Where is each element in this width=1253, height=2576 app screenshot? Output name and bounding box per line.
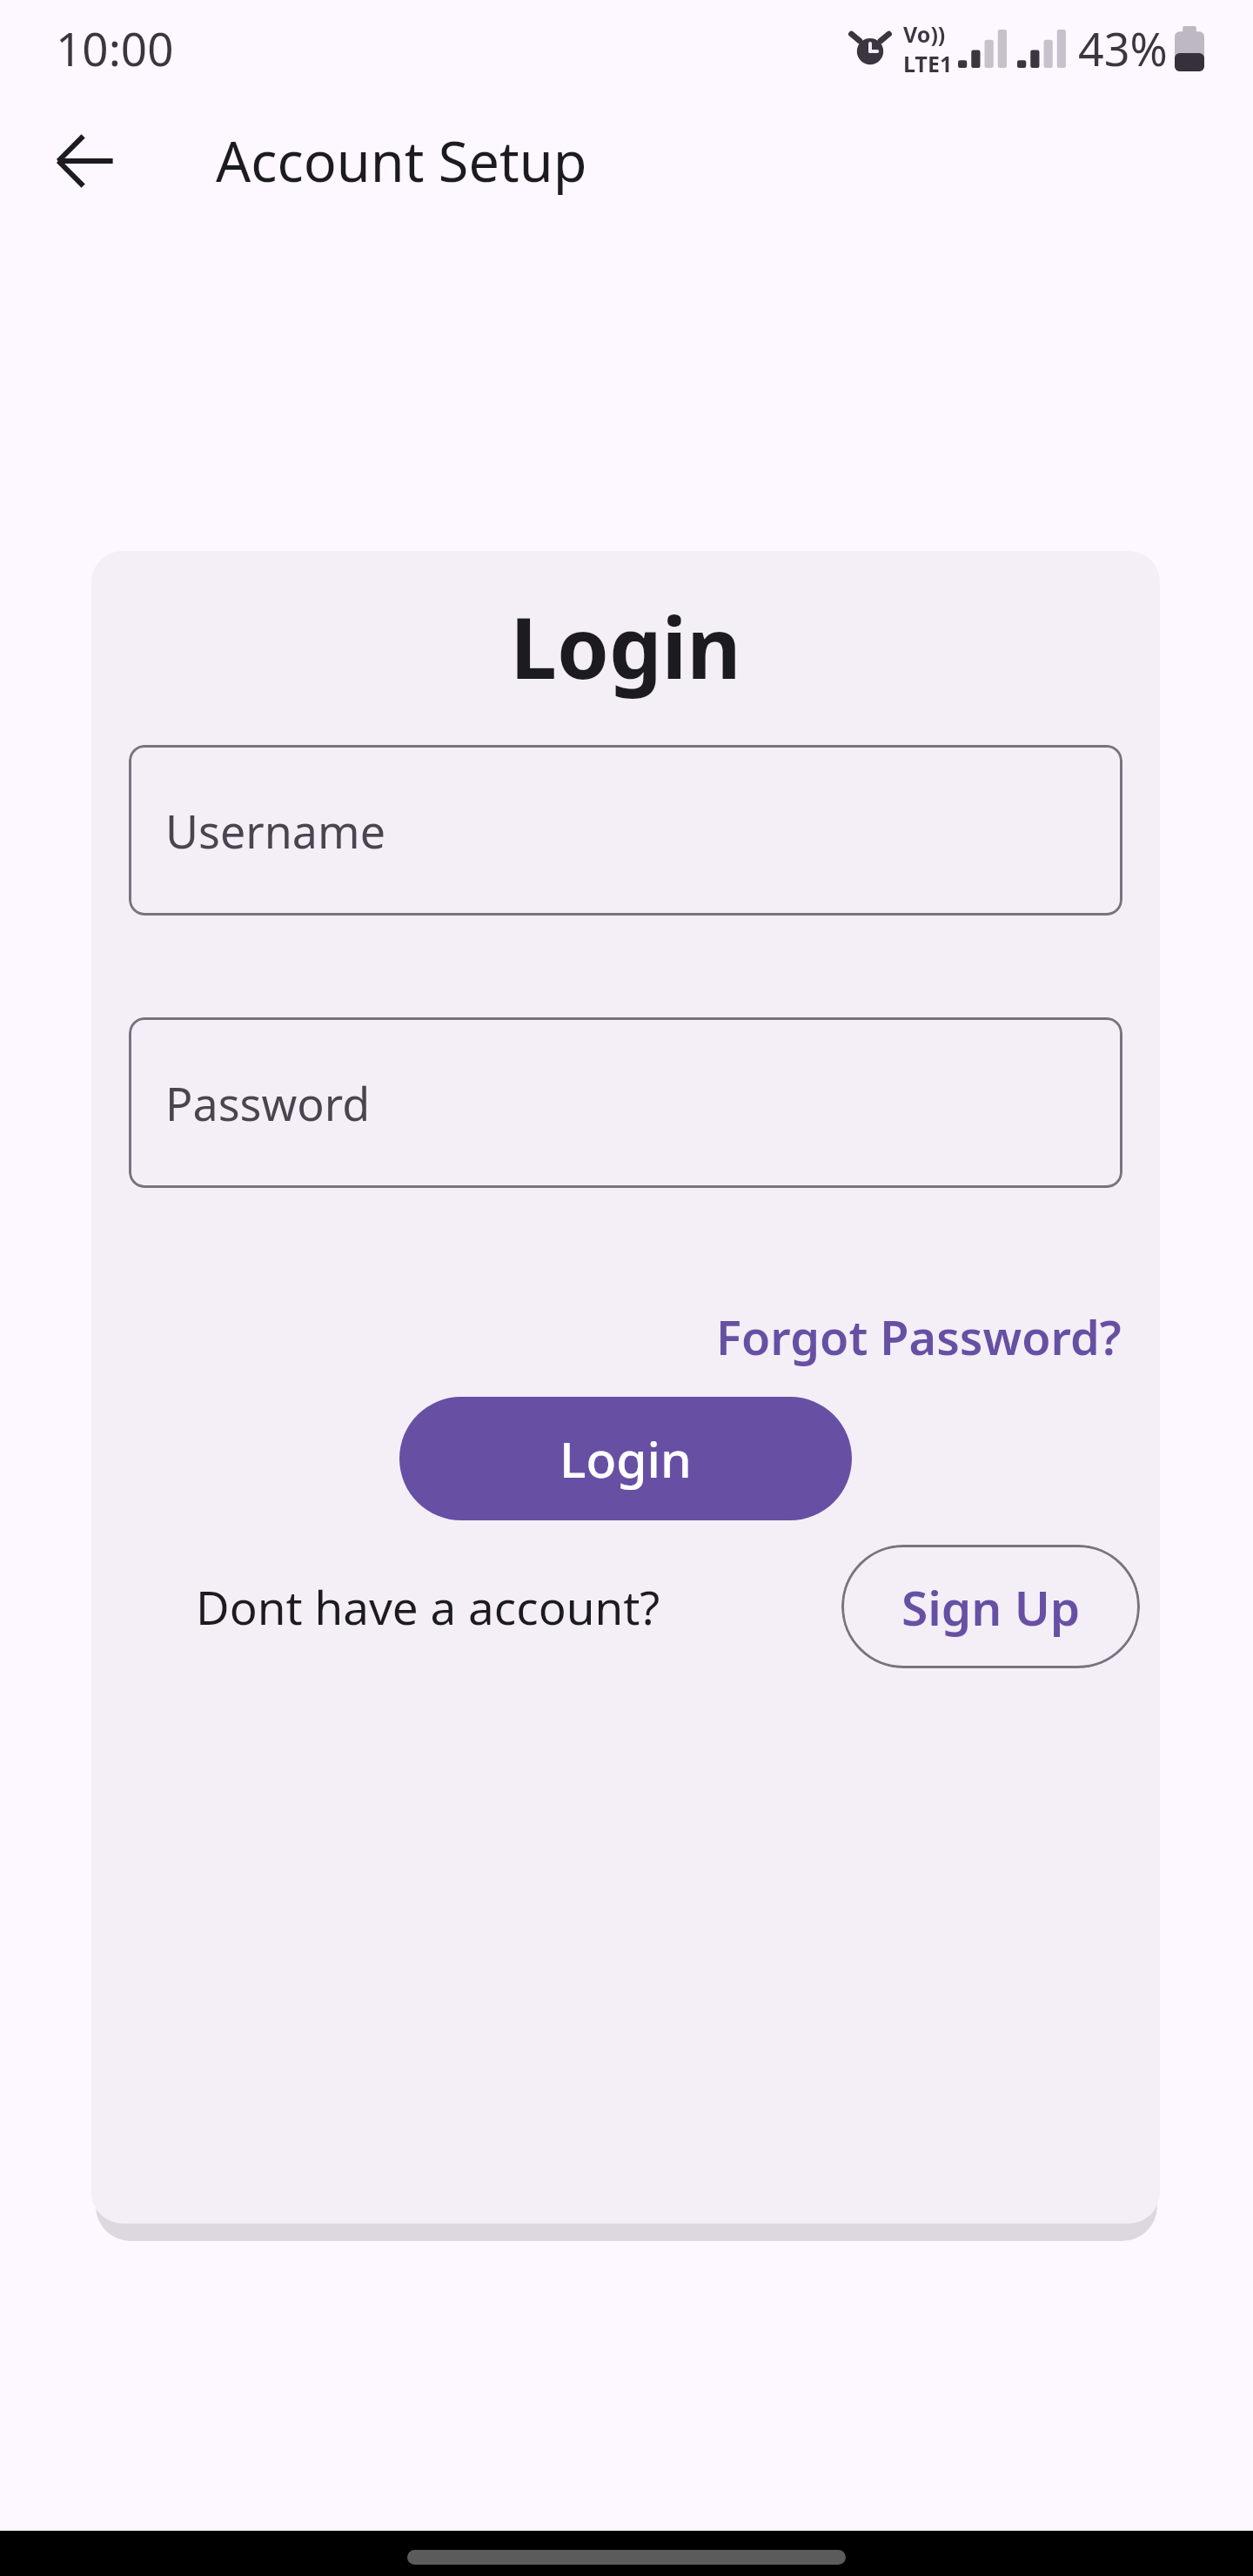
staticText: Forgot Password? — [716, 1305, 1122, 1369]
staticText: LTE1 — [903, 49, 953, 78]
staticText: Username — [165, 800, 385, 862]
staticText: 43% — [1078, 17, 1168, 79]
staticText: Login — [91, 589, 1160, 703]
staticText: 10:00 — [56, 17, 174, 79]
staticText: Sign Up — [901, 1574, 1081, 1640]
button[interactable]: Sign Up — [841, 1545, 1140, 1668]
staticText: Login — [559, 1425, 692, 1493]
button[interactable]: Back — [32, 109, 137, 213]
staticText: Vo)) — [903, 19, 946, 49]
staticText: Account Setup — [216, 124, 587, 198]
button[interactable]: Password — [129, 1017, 1122, 1188]
button[interactable]: Login — [399, 1397, 852, 1520]
button[interactable]: Username — [129, 745, 1122, 916]
button[interactable]: Forgot Password? — [711, 1299, 1127, 1374]
staticText: Dont have a account? — [196, 1575, 660, 1638]
staticText: Password — [165, 1072, 371, 1134]
